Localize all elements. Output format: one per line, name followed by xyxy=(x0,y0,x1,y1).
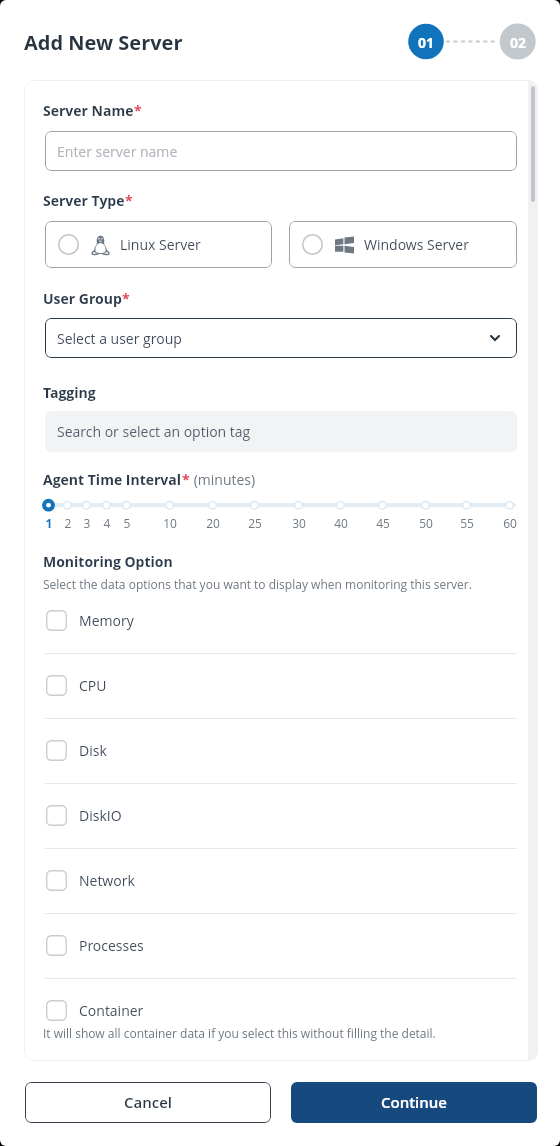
staticText: Select a user group xyxy=(57,329,182,348)
staticText: 5 xyxy=(115,515,139,531)
button[interactable]: Processes xyxy=(46,935,518,956)
staticText: Server Name xyxy=(43,101,134,120)
staticText: 50 xyxy=(414,515,438,531)
staticText: 25 xyxy=(243,515,267,531)
staticText: 02 xyxy=(510,33,526,52)
staticText: Agent Time Interval xyxy=(43,470,182,489)
staticText: * xyxy=(122,289,130,308)
button[interactable]: Linux Server xyxy=(45,221,272,268)
button[interactable]: Memory xyxy=(46,610,518,631)
staticText: (minutes) xyxy=(190,470,256,489)
button[interactable]: Cancel xyxy=(25,1082,271,1123)
button[interactable]: Continue xyxy=(291,1082,537,1123)
staticText: DiskIO xyxy=(79,806,122,825)
button[interactable]: Windows Server xyxy=(289,221,517,268)
staticText: User Group xyxy=(43,289,122,308)
staticText: Cancel xyxy=(124,1092,172,1112)
staticText: Network xyxy=(79,871,135,890)
staticText: 55 xyxy=(455,515,479,531)
staticText: Monitoring Option xyxy=(43,552,173,571)
staticText: 10 xyxy=(158,515,182,531)
staticText: 40 xyxy=(329,515,353,531)
staticText: Continue xyxy=(381,1092,447,1112)
button[interactable]: CPU xyxy=(46,675,518,696)
button[interactable]: 01 xyxy=(408,24,444,60)
button[interactable]: Disk xyxy=(46,740,518,761)
staticText: Windows Server xyxy=(364,235,469,254)
button[interactable]: 02 xyxy=(500,24,536,60)
staticText: Tagging xyxy=(43,383,96,402)
staticText: * xyxy=(134,101,142,120)
button[interactable]: Container xyxy=(46,1000,518,1021)
button[interactable]: Search or select an option tag xyxy=(45,411,517,452)
staticText: Select the data options that you want to… xyxy=(43,576,472,592)
staticText: * xyxy=(125,191,133,210)
staticText: Server Type xyxy=(43,191,125,210)
staticText: 4 xyxy=(95,515,119,531)
staticText: 45 xyxy=(371,515,395,531)
staticText: 20 xyxy=(201,515,225,531)
staticText: 01 xyxy=(418,33,434,52)
staticText: Add New Server xyxy=(24,29,183,56)
button[interactable]: Select a user group xyxy=(45,318,517,358)
staticText: Linux Server xyxy=(120,235,201,254)
staticText: Search or select an option tag xyxy=(57,422,251,441)
staticText: 3 xyxy=(75,515,99,531)
staticText: * xyxy=(182,470,190,489)
button[interactable]: Network xyxy=(46,870,518,891)
button[interactable]: Enter server name xyxy=(45,131,517,171)
staticText: CPU xyxy=(79,676,107,695)
staticText: 60 xyxy=(498,515,522,531)
staticText: Disk xyxy=(79,741,107,760)
staticText: 30 xyxy=(287,515,311,531)
staticText: 2 xyxy=(56,515,80,531)
staticText: Memory xyxy=(79,611,134,630)
staticText: Container xyxy=(79,1001,144,1020)
staticText: It will show all container data if you s… xyxy=(43,1025,436,1041)
staticText: Enter server name xyxy=(57,142,178,161)
staticText: Processes xyxy=(79,936,144,955)
button[interactable]: DiskIO xyxy=(46,805,518,826)
staticText: 1 xyxy=(37,515,61,531)
